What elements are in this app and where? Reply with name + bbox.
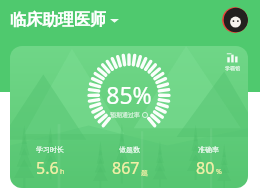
staticText: 临床助理医师 xyxy=(10,10,106,30)
staticText: 85% xyxy=(106,79,152,110)
staticText: 预期通过率 xyxy=(110,111,140,119)
staticText: 80 xyxy=(196,157,215,179)
button[interactable]: 准确率 xyxy=(169,144,248,180)
staticText: 做题数 xyxy=(119,145,140,154)
staticText: 5.6 xyxy=(36,157,59,179)
button[interactable]: 学习时长 xyxy=(10,144,90,180)
staticText: 学霸馆 xyxy=(225,65,240,71)
button[interactable]: 学霸馆 xyxy=(222,49,243,73)
staticText: 题 xyxy=(141,168,148,177)
button[interactable]: Profile xyxy=(222,7,248,33)
staticText: h xyxy=(60,167,65,177)
button[interactable]: 做题数 xyxy=(90,144,169,180)
staticText: 867 xyxy=(112,157,140,179)
staticText: 准确率 xyxy=(198,145,219,154)
staticText: % xyxy=(216,167,222,177)
button[interactable]: 学霸馆 xyxy=(10,46,248,188)
staticText: 学习时长 xyxy=(36,145,64,154)
button[interactable]: 临床助理医师 xyxy=(10,8,119,32)
